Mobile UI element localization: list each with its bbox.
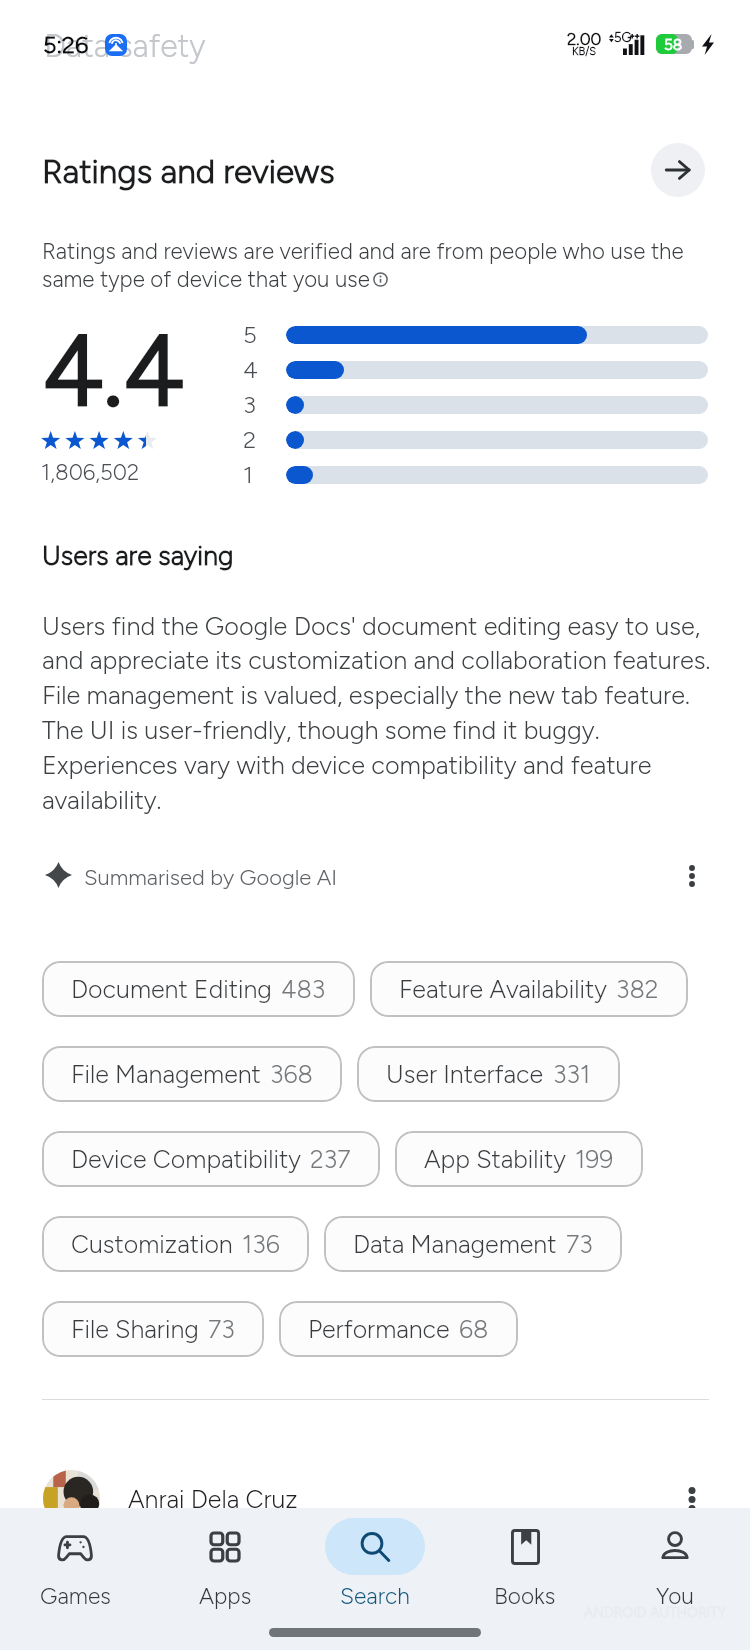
staticText: 4 (243, 355, 258, 384)
staticText: 4.4 (42, 310, 185, 430)
staticText: Device Compatibility (71, 1144, 301, 1174)
staticText: Anrai Dela Cruz (128, 1484, 298, 1514)
staticText: Summarised by Google AI (84, 864, 338, 890)
button[interactable]: File Management (42, 1046, 342, 1102)
staticText: 3 (243, 390, 256, 419)
staticText: Ratings and reviews are verified and are… (42, 238, 684, 293)
staticText: 483 (281, 974, 326, 1004)
staticText: 73 (208, 1314, 235, 1344)
button[interactable]: Search (300, 1508, 450, 1622)
staticText: User Interface (386, 1059, 544, 1089)
staticText: 1 (243, 460, 253, 489)
staticText: 382 (616, 974, 659, 1004)
staticText: App Stability (424, 1144, 566, 1174)
button[interactable]: You (600, 1508, 750, 1622)
staticText: File Sharing (71, 1314, 199, 1344)
button[interactable]: User Interface (357, 1046, 620, 1102)
staticText: 5:26 (43, 31, 89, 59)
staticText: 58 (664, 35, 683, 54)
staticText: Data safety (44, 27, 206, 65)
staticText: Games (40, 1582, 111, 1609)
staticText: 368 (270, 1059, 313, 1089)
button[interactable]: Data Management (324, 1216, 622, 1272)
button[interactable]: Books (450, 1508, 600, 1622)
staticText: 237 (310, 1144, 351, 1174)
staticText: Apps (199, 1582, 252, 1609)
staticText: 73 (566, 1229, 593, 1259)
staticText: Search (340, 1582, 410, 1609)
staticText: 1,806,502 (41, 459, 140, 486)
button[interactable]: Document Editing (42, 961, 355, 1017)
staticText: KB/S (572, 45, 597, 58)
button[interactable]: More options (672, 856, 712, 896)
button[interactable]: Review options (672, 1479, 712, 1519)
staticText: Feature Availability (399, 974, 607, 1004)
staticText: Performance (308, 1314, 450, 1344)
button[interactable]: Customization (42, 1216, 309, 1272)
staticText: Document Editing (71, 974, 272, 1004)
staticText: Books (494, 1582, 556, 1609)
button[interactable]: File Sharing (42, 1301, 264, 1357)
staticText: Data Management (353, 1229, 557, 1259)
staticText: 2.00 (567, 29, 602, 49)
button[interactable]: Games (0, 1508, 150, 1622)
staticText: 199 (575, 1144, 614, 1174)
button[interactable]: App Stability (395, 1131, 643, 1187)
button[interactable]: Feature Availability (370, 961, 688, 1017)
staticText: Customization (71, 1229, 233, 1259)
staticText: 2 (243, 425, 257, 454)
staticText: File Management (71, 1059, 261, 1089)
button[interactable]: See all ratings and reviews (651, 143, 705, 197)
staticText: 5G (614, 30, 632, 46)
staticText: 68 (459, 1314, 489, 1344)
button[interactable]: Device Compatibility (42, 1131, 380, 1187)
button[interactable]: Apps (150, 1508, 300, 1622)
staticText: 331 (553, 1059, 591, 1089)
staticText: Ratings and reviews (42, 151, 335, 191)
staticText: 5 (243, 320, 257, 349)
staticText: You (656, 1582, 694, 1609)
staticText: Users are saying (42, 540, 234, 572)
staticText: 136 (242, 1229, 280, 1259)
staticText: Users find the Google Docs' document edi… (42, 611, 711, 816)
button[interactable]: Performance (279, 1301, 518, 1357)
